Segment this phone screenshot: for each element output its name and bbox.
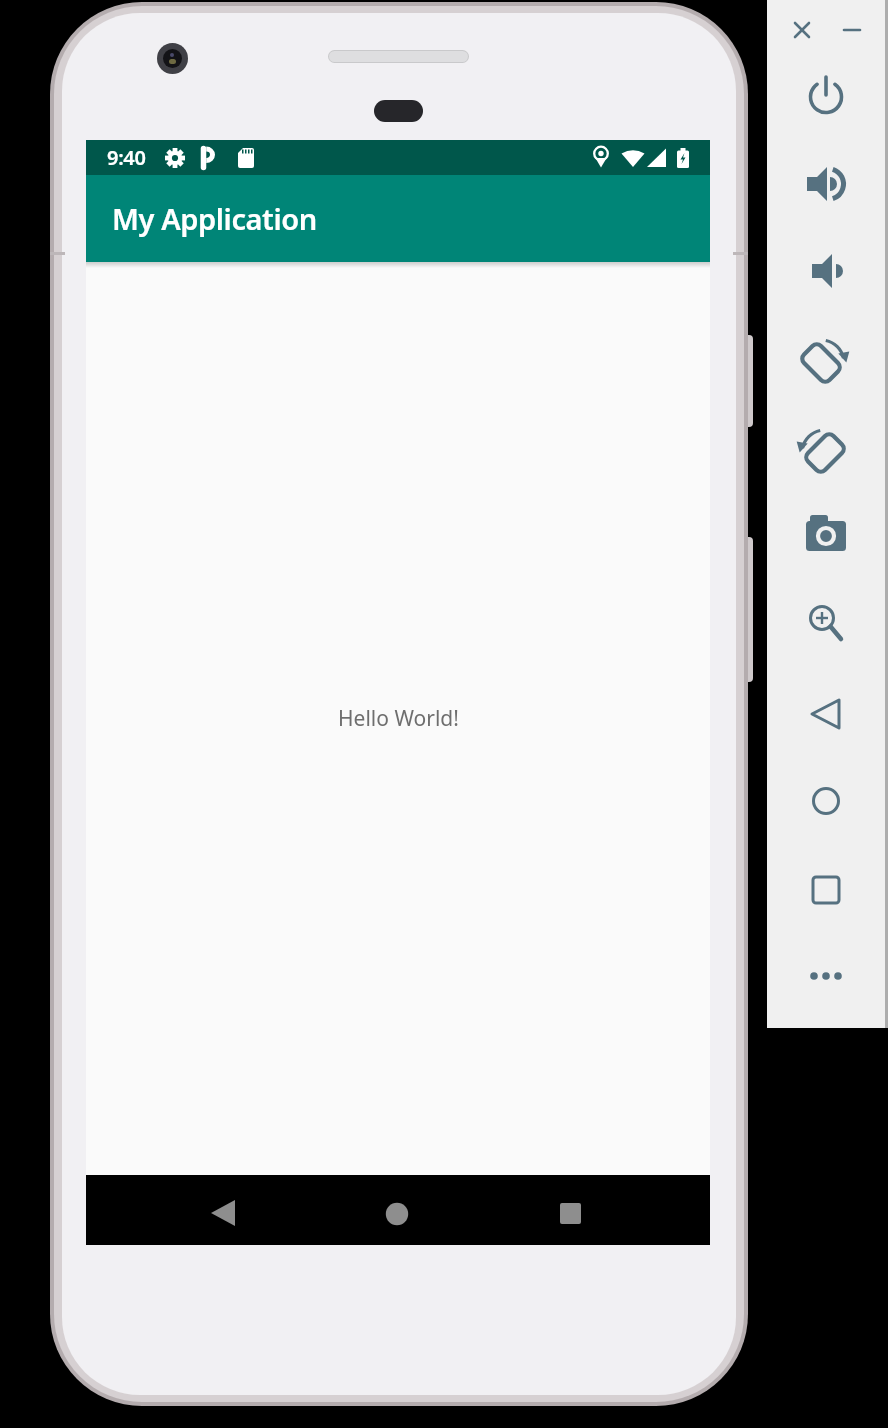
button[interactable] xyxy=(796,505,856,565)
button[interactable] xyxy=(796,589,856,649)
button[interactable] xyxy=(796,946,856,1006)
button[interactable] xyxy=(796,155,856,215)
button[interactable] xyxy=(796,65,856,125)
staticText: 9:40 xyxy=(107,144,146,171)
button[interactable] xyxy=(796,771,856,831)
button[interactable] xyxy=(362,1180,432,1240)
staticText: My Application xyxy=(112,199,317,238)
button[interactable] xyxy=(796,860,856,920)
button[interactable] xyxy=(838,16,866,44)
staticText: Hello World! xyxy=(338,704,459,733)
button[interactable] xyxy=(796,240,856,300)
button[interactable] xyxy=(788,16,816,44)
button[interactable] xyxy=(796,684,856,744)
button[interactable] xyxy=(536,1180,606,1240)
button[interactable] xyxy=(767,0,888,1028)
button[interactable] xyxy=(796,420,856,480)
button[interactable] xyxy=(188,1180,258,1240)
button[interactable] xyxy=(796,330,856,390)
